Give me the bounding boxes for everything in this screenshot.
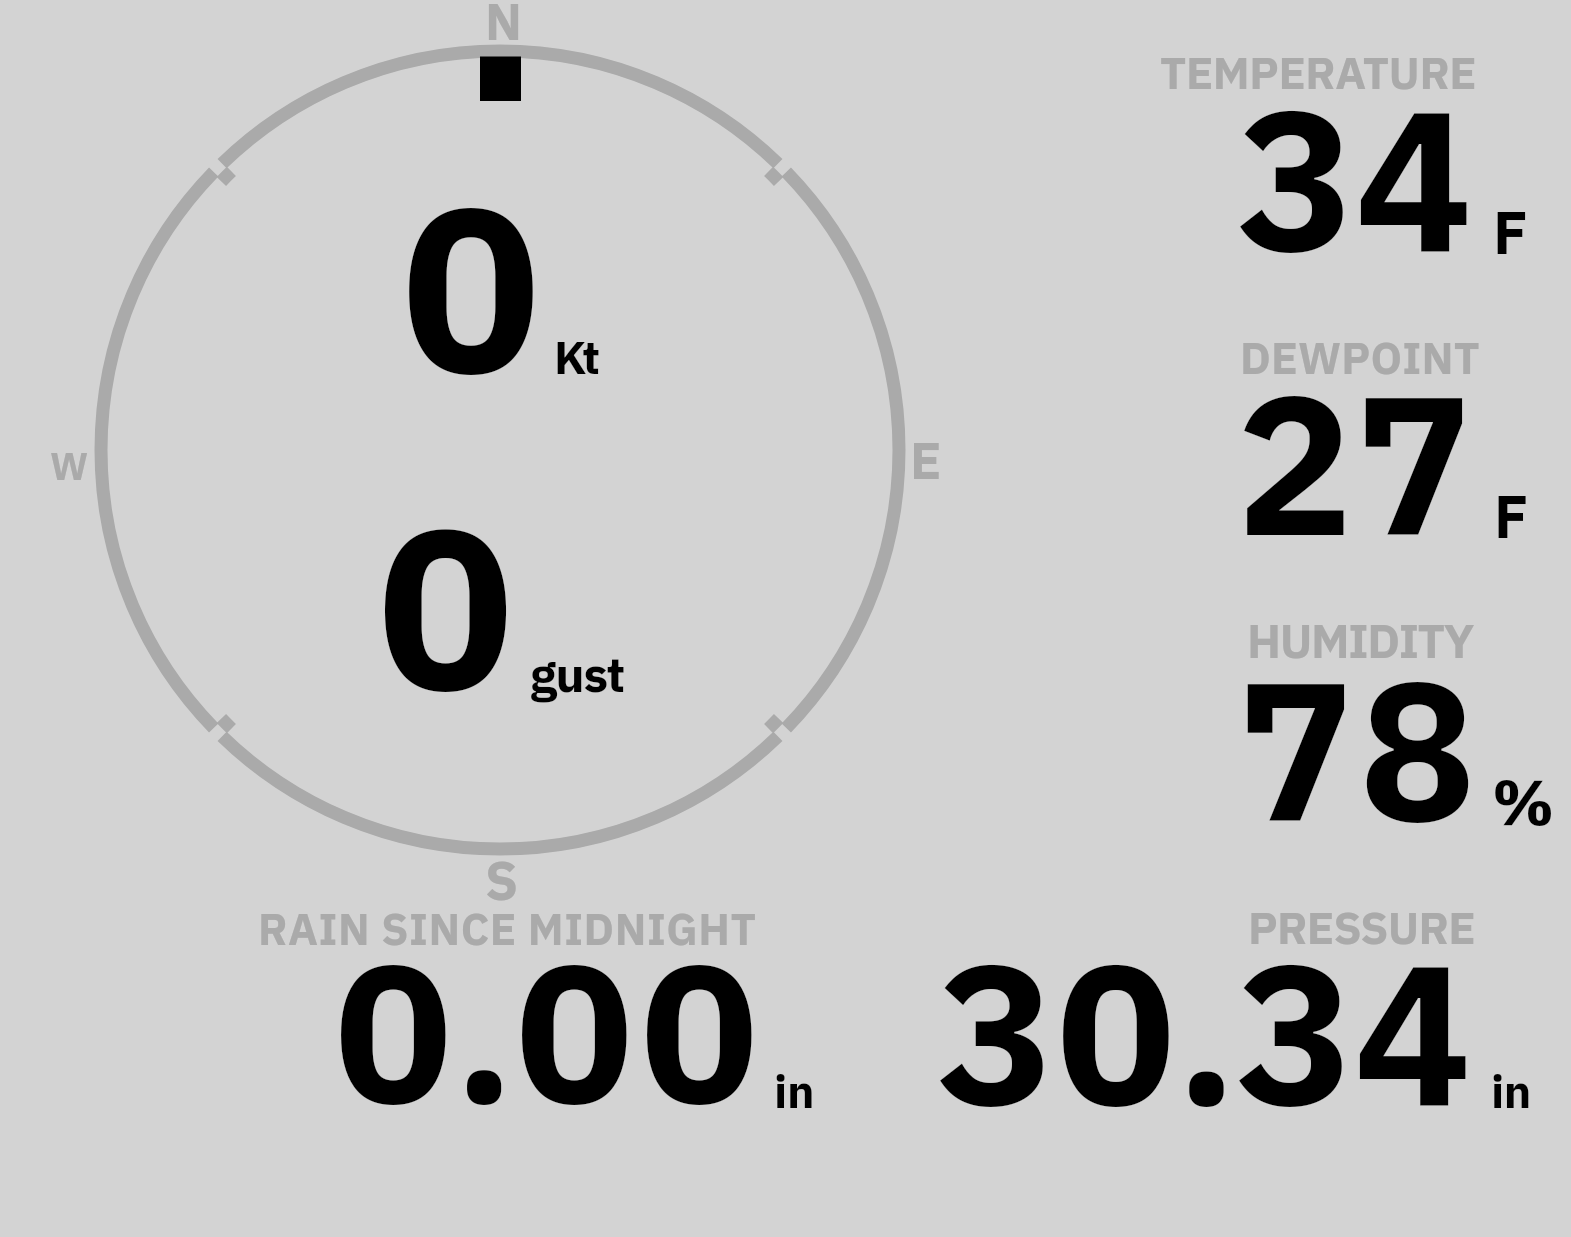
staticText: 4 [1354, 895, 1472, 1195]
staticText: Kt [554, 324, 598, 395]
button[interactable]: Pressure 30.34 in [860, 880, 1555, 1130]
staticText: E [910, 424, 942, 503]
staticText: TEMPERATURE [1160, 41, 1477, 110]
staticText: PRESSURE [1248, 896, 1476, 965]
staticText: 0 [516, 895, 633, 1192]
button[interactable]: Rain since midnight 0.00 in [200, 880, 820, 1130]
staticText: 8 [1359, 612, 1476, 910]
staticText: 4 [1355, 41, 1473, 341]
button[interactable]: Wind speed and direction [20, 20, 980, 880]
staticText: 0 [335, 895, 452, 1192]
staticText: 3 [1237, 41, 1355, 341]
staticText: 3 [937, 895, 1055, 1195]
staticText: gust [530, 640, 624, 715]
staticText: 0 [378, 448, 514, 792]
staticText: RAIN SINCE MIDNIGHT [258, 898, 757, 965]
staticText: in [774, 1059, 815, 1130]
staticText: . [1176, 895, 1237, 1195]
staticText: HUMIDITY [1247, 608, 1474, 680]
staticText: N [485, 0, 523, 63]
button[interactable]: Humidity 78 percent [1010, 585, 1555, 850]
staticText: 2 [1236, 326, 1354, 624]
staticText: DEWPOINT [1240, 327, 1480, 395]
staticText: F [1493, 190, 1528, 281]
staticText: F [1494, 475, 1529, 565]
staticText: 0 [641, 895, 758, 1192]
staticText: S [485, 843, 519, 925]
staticText: in [1491, 1059, 1531, 1130]
button[interactable]: Temperature 34 F [1010, 20, 1555, 280]
staticText: . [454, 895, 515, 1192]
staticText: 7 [1355, 326, 1473, 624]
staticText: 3 [1236, 895, 1354, 1195]
staticText: 0 [402, 126, 540, 478]
staticText: % [1492, 757, 1555, 855]
button[interactable]: Dewpoint 27 F [1010, 300, 1555, 565]
staticText: 7 [1237, 612, 1354, 910]
staticText: W [50, 438, 89, 498]
staticText: 0 [1057, 895, 1175, 1195]
